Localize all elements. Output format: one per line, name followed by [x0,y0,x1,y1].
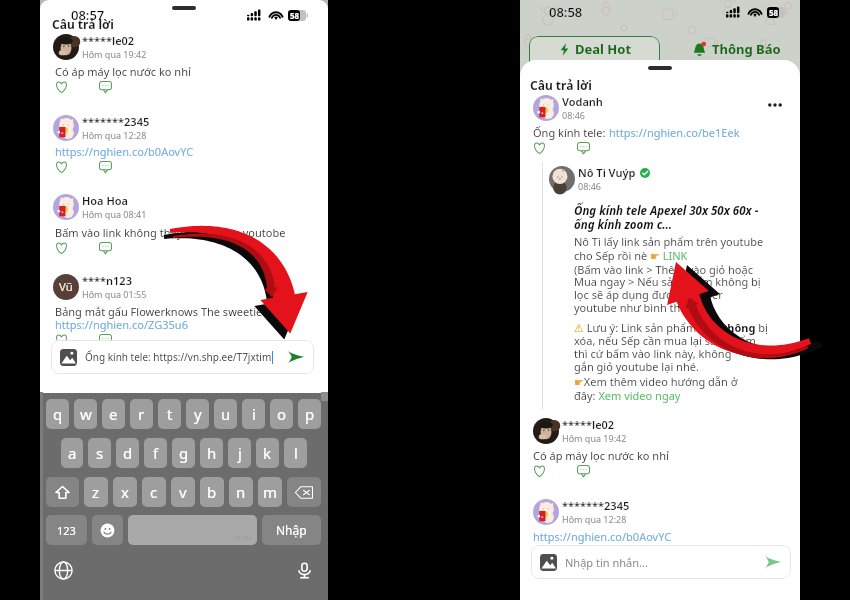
staticText: Nhập [276,522,307,538]
staticText: *******2345 [82,114,150,129]
button[interactable]: b [200,477,224,507]
staticText: n [236,482,246,502]
button[interactable]: r [130,399,153,429]
button[interactable]: j [228,438,251,468]
staticText: Thông Báo [712,40,781,58]
button[interactable]: Like [533,142,546,154]
button[interactable]: w [74,399,97,429]
button[interactable]: m [258,477,282,507]
staticText: c [150,482,158,502]
button[interactable]: x [113,477,137,507]
staticText: b [207,482,217,502]
button[interactable]: k [256,438,279,468]
staticText: u [221,404,231,424]
button[interactable]: Ống kính tele: https://vn.shp.ee/T7jxtim [60,340,305,374]
staticText: 123 [57,523,76,538]
staticText: Vũ [59,279,73,295]
staticText: https://nghien.co/b0AovYC [55,144,194,159]
staticText: 08:57 [71,6,105,24]
button[interactable]: Space [128,515,257,545]
button[interactable]: Comment [99,334,112,346]
staticText: q [53,404,63,424]
button[interactable]: h [200,438,223,468]
staticText: i [252,404,256,424]
staticText: Bảng mắt gấu Flowerknows The sweetie [55,304,263,319]
button[interactable]: d [116,438,139,468]
staticText: Hôm qua 19:42 [82,48,147,60]
button[interactable]: i [242,399,265,429]
button[interactable]: v [171,477,195,507]
staticText: Câu trả lời [52,16,114,32]
staticText: 58 [290,10,300,21]
staticText: z [92,482,100,502]
button[interactable]: u [214,399,237,429]
staticText: a [68,443,77,463]
staticText: Có áp máy lọc nước ko nhỉ [533,448,669,463]
staticText: v [179,482,187,502]
button[interactable]: t [158,399,181,429]
staticText: ⚠ Lưu ý: Link sản phẩm này không bị xóa,… [574,320,768,374]
staticText: Hôm qua 08:41 [82,208,147,220]
button[interactable]: Emoji [92,515,123,545]
button[interactable]: q [46,399,69,429]
button[interactable]: Backspace [287,477,321,507]
staticText: Hôm qua 19:42 [562,432,627,444]
button[interactable]: y [186,399,209,429]
button[interactable]: Comment [99,81,112,93]
staticText: r [138,404,145,424]
button[interactable]: Like [55,242,68,254]
button[interactable]: Nhập tin nhắn... [540,545,782,579]
staticText: d [123,443,133,463]
button[interactable]: More options [764,98,786,112]
button[interactable]: Send [287,348,305,366]
button[interactable]: Comment [99,242,112,254]
button[interactable]: Comment [99,161,112,173]
staticText: Hôm qua 12:28 [562,513,627,525]
staticText: Câu trả lời [530,77,592,93]
button[interactable]: Send [764,553,782,571]
button[interactable]: z [84,477,108,507]
staticText: *****le02 [562,417,615,432]
staticText: f [153,443,159,463]
button[interactable]: Thông Báo [692,40,781,58]
button[interactable]: n [229,477,253,507]
button[interactable]: Voice input [295,561,314,580]
staticText: y [194,404,202,424]
button[interactable]: Comment [577,465,590,477]
button[interactable]: Like [55,334,68,346]
button[interactable]: Shift [46,477,79,507]
button[interactable]: Deal Hot [529,36,660,62]
button[interactable]: 123 [46,515,87,545]
button[interactable]: Like [55,161,68,173]
button[interactable]: s [88,438,111,468]
staticText: m [263,482,278,502]
button[interactable]: a [61,438,83,468]
staticText: *****le02 [82,33,135,48]
staticText: j [238,443,242,463]
staticText: *******2345 [562,498,630,513]
staticText: Nô Ti Vuýp [578,165,636,180]
staticText: https://nghien.co/ZG35u6 [55,317,188,332]
button[interactable]: o [270,399,293,429]
button[interactable]: e [102,399,125,429]
staticText: l [294,443,298,463]
staticText: https://nghien.co/be1Eek [609,125,740,140]
staticText: t [167,404,173,424]
staticText: Nô Ti lấy link sản phẩm trên youtube cho… [574,234,764,263]
staticText: Hôm qua 01:55 [82,288,147,300]
button[interactable]: Like [55,81,68,93]
button[interactable]: Nhập [262,515,321,545]
staticText: h [207,443,217,463]
button[interactable]: Like [533,465,546,477]
button[interactable]: Change language [54,561,73,580]
button[interactable]: f [144,438,167,468]
staticText: Ống kính tele: [533,125,609,140]
button[interactable]: g [172,438,195,468]
button[interactable]: p [298,399,321,429]
staticText: s [96,443,104,463]
button[interactable]: c [142,477,166,507]
staticText: o [277,404,287,424]
staticText: ☛Xem thêm video hướng dẫn ở đây: Xem vid… [574,374,738,403]
button[interactable]: l [284,438,307,468]
button[interactable]: Comment [577,142,590,154]
